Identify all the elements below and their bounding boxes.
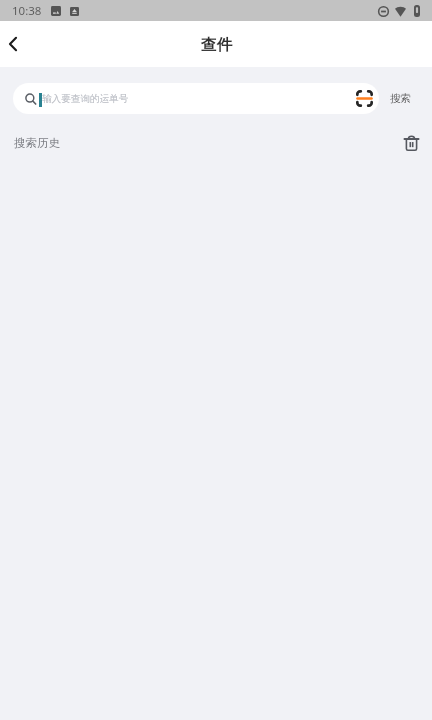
button[interactable]: Clear search history — [400, 132, 422, 154]
staticText: 输入要查询的运单号 — [42, 93, 129, 105]
staticText: 10:38 — [12, 3, 42, 19]
staticText: 搜索历史 — [14, 136, 60, 150]
button[interactable]: 搜索 — [385, 87, 416, 110]
staticText: 搜索 — [390, 92, 411, 105]
staticText: 查件 — [201, 35, 232, 55]
button[interactable]: Back — [0, 21, 38, 67]
button[interactable]: 输入要查询的运单号 — [13, 83, 379, 114]
button[interactable]: Scan barcode — [353, 87, 375, 109]
